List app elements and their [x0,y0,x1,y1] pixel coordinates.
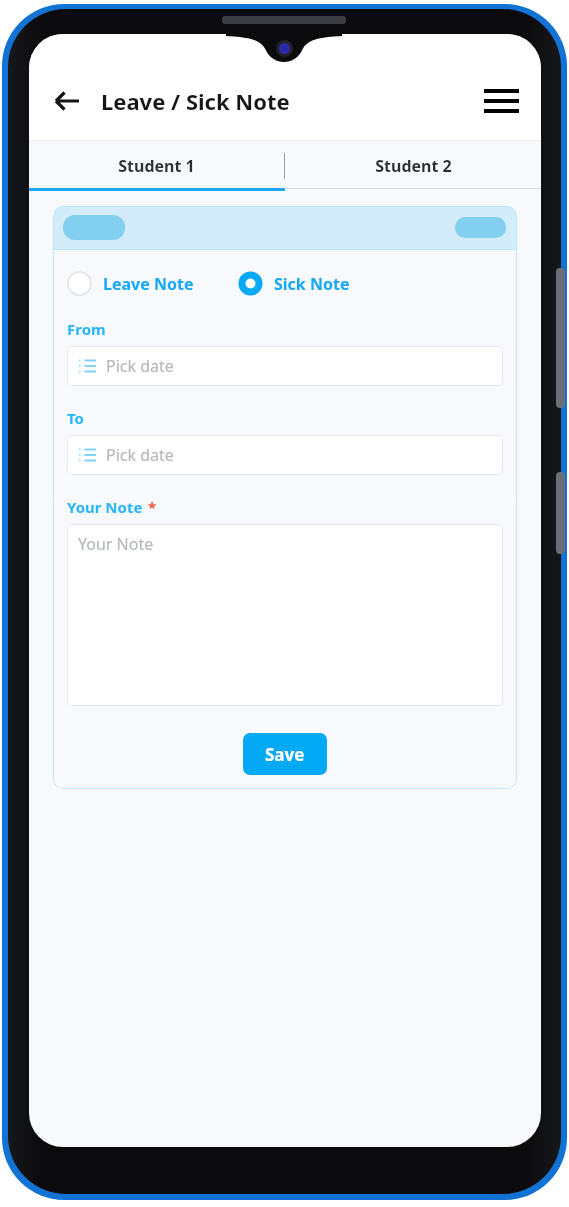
staticText: * [148,497,157,517]
button[interactable]: Back [47,81,87,121]
button[interactable]: Menu [479,79,523,123]
button[interactable]: Your Note [67,524,503,706]
staticText: Your Note [67,497,143,517]
staticText: Student 1 [118,155,195,177]
staticText: From [67,319,106,339]
staticText: To [67,408,84,428]
button[interactable]: Pick date [67,435,503,475]
staticText: Leave / Sick Note [101,86,290,116]
staticText: Save [265,743,305,766]
staticText: Pick date [106,444,174,466]
button[interactable]: Pick date [67,346,503,386]
button[interactable]: Save [243,733,327,775]
button[interactable]: Student 2 [285,141,541,191]
staticText: Leave Note [103,273,194,295]
staticText: Your Note [78,533,154,555]
button[interactable]: Sick Note [238,271,350,296]
staticText: Sick Note [274,273,350,295]
staticText: Pick date [106,355,174,377]
button[interactable]: Leave Note [67,271,194,296]
staticText: Student 2 [375,155,452,177]
button[interactable]: Student 1 [29,141,284,191]
